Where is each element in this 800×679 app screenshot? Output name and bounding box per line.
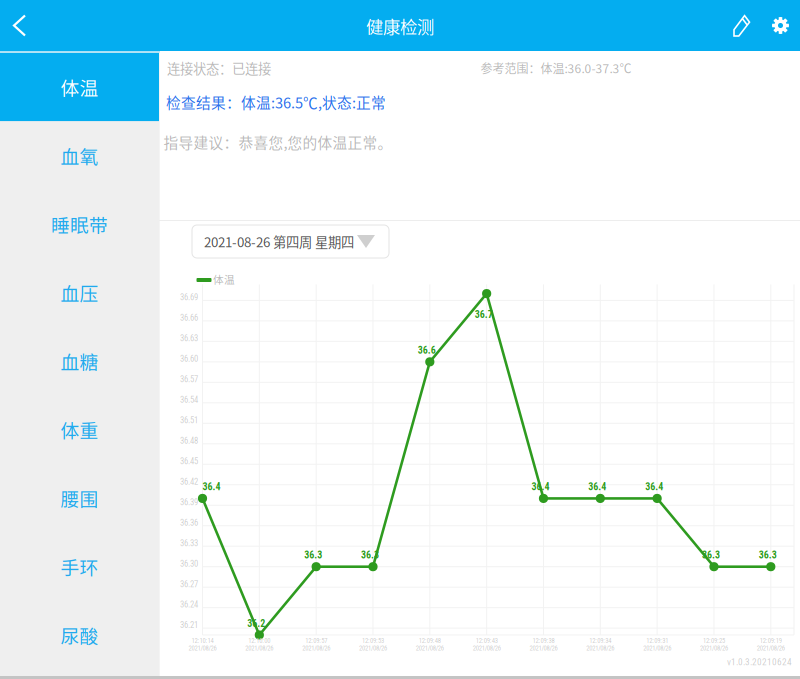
- staticText: 36.69: [180, 292, 198, 302]
- staticText: 36.54: [180, 395, 198, 405]
- staticText: 36.7: [475, 309, 493, 320]
- staticText: 2021/08/26: [302, 644, 330, 652]
- staticText: 36.33: [180, 538, 198, 548]
- button[interactable]: Back: [0, 0, 49, 51]
- staticText: 12:09:19: [760, 637, 782, 644]
- button[interactable]: 睡眠带: [0, 190, 159, 258]
- staticText: 血糖: [60, 347, 98, 374]
- staticText: 2021/08/26: [416, 644, 444, 652]
- staticText: 36.51: [180, 415, 198, 425]
- staticText: 体温: [60, 73, 98, 100]
- staticText: 2021/08/26: [757, 644, 785, 652]
- staticText: 体重: [60, 416, 98, 443]
- staticText: 2021/08/26: [245, 644, 273, 652]
- staticText: 36.60: [180, 354, 198, 364]
- staticText: 12:09:38: [532, 637, 554, 644]
- staticText: 睡眠带: [51, 210, 108, 237]
- staticText: 36.39: [180, 497, 198, 507]
- button[interactable]: 体温: [0, 53, 159, 121]
- button[interactable]: 体重: [0, 395, 159, 464]
- staticText: 12:09:53: [362, 637, 384, 644]
- staticText: 36.6: [418, 344, 436, 356]
- staticText: 12:09:34: [589, 637, 611, 644]
- staticText: 检查结果：体温:36.5℃,状态:正常: [166, 91, 386, 113]
- staticText: 36.3: [361, 549, 379, 561]
- staticText: 2021/08/26: [586, 644, 614, 652]
- staticText: 36.63: [180, 333, 198, 343]
- button[interactable]: Settings: [759, 0, 800, 51]
- staticText: 12:10:14: [191, 637, 213, 644]
- staticText: 36.42: [180, 477, 198, 487]
- staticText: 36.4: [202, 481, 220, 493]
- staticText: 连接状态：已连接: [167, 58, 271, 78]
- staticText: 12:09:31: [646, 637, 668, 644]
- staticText: 36.45: [180, 456, 198, 466]
- staticText: 指导建议：恭喜您,您的体温正常。: [163, 131, 392, 153]
- button[interactable]: 尿酸: [0, 601, 159, 669]
- staticText: 2021/08/26: [529, 644, 557, 652]
- staticText: 2021/08/26: [359, 644, 387, 652]
- staticText: 36.57: [180, 374, 198, 384]
- button[interactable]: 腰围: [0, 464, 159, 532]
- staticText: 36.24: [180, 600, 198, 610]
- staticText: 2021/08/26: [643, 644, 671, 652]
- staticText: 2021-08-26 第四周 星期四: [204, 232, 354, 251]
- button[interactable]: 手环: [0, 532, 159, 601]
- staticText: 血氧: [60, 142, 98, 169]
- staticText: 12:10:00: [248, 637, 270, 644]
- staticText: 2021/08/26: [188, 644, 216, 652]
- staticText: 12:09:57: [305, 637, 327, 644]
- staticText: 36.21: [180, 620, 198, 630]
- staticText: 36.4: [645, 481, 663, 493]
- staticText: 36.27: [180, 579, 198, 589]
- button[interactable]: 血糖: [0, 327, 159, 395]
- staticText: 12:09:48: [419, 637, 441, 644]
- staticText: 健康检测: [366, 13, 434, 39]
- staticText: 体温: [213, 271, 235, 287]
- staticText: 36.66: [180, 313, 198, 323]
- staticText: 血压: [60, 279, 98, 306]
- button[interactable]: Edit: [718, 0, 759, 51]
- staticText: 腰围: [60, 484, 98, 511]
- staticText: 36.4: [531, 481, 549, 493]
- staticText: 参考范围：体温:36.0-37.3℃: [480, 59, 631, 77]
- staticText: 2021/08/26: [700, 644, 728, 652]
- staticText: v1.0.3.20210624: [727, 656, 792, 667]
- staticText: 12:09:43: [476, 637, 498, 644]
- staticText: 尿酸: [60, 621, 98, 648]
- button[interactable]: 2021-08-26 第四周 星期四: [192, 225, 389, 258]
- staticText: 36.2: [247, 618, 265, 629]
- staticText: 36.4: [588, 481, 606, 493]
- staticText: 36.3: [759, 549, 777, 561]
- staticText: 36.30: [180, 559, 198, 569]
- staticText: 36.3: [702, 549, 720, 561]
- button[interactable]: 血压: [0, 258, 159, 327]
- staticText: 36.48: [180, 436, 198, 446]
- staticText: 36.3: [304, 549, 322, 561]
- staticText: 12:09:25: [703, 637, 725, 644]
- staticText: 手环: [60, 553, 98, 580]
- button[interactable]: 血氧: [0, 121, 159, 190]
- staticText: 2021/08/26: [473, 644, 501, 652]
- staticText: 36.36: [180, 518, 198, 528]
